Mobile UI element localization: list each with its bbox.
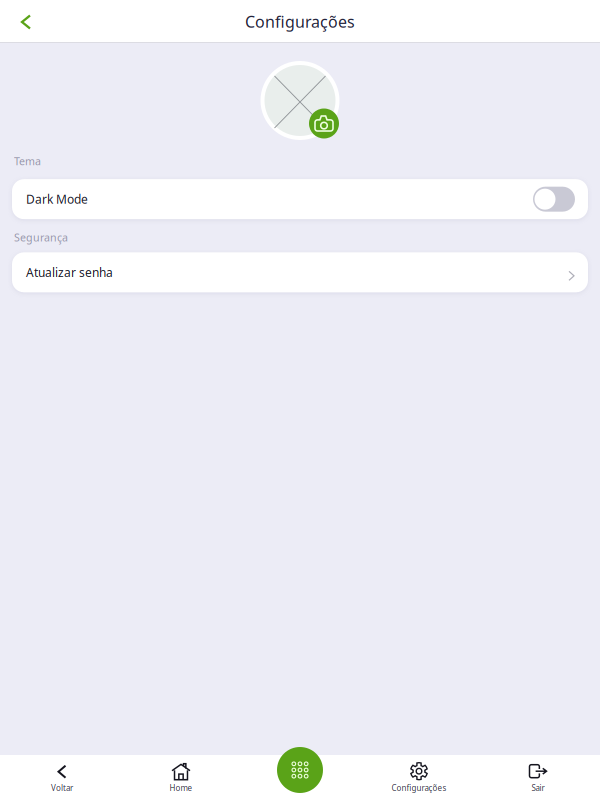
staticText: Configurações [245,11,355,32]
button[interactable]: Home [121,755,240,800]
staticText: Segurança [14,230,68,244]
button[interactable]: Voltar [0,0,44,42]
button[interactable]: Dark Mode [0,179,600,219]
staticText: Tema [14,154,41,168]
staticText: Configurações [391,783,446,793]
staticText: Atualizar senha [26,264,113,280]
button[interactable]: Menu [277,747,323,793]
staticText: Sair [531,783,544,793]
staticText: Voltar [51,783,73,793]
button[interactable]: Configurações [359,755,478,800]
button[interactable]: Alterar foto [309,108,339,138]
staticText: Dark Mode [26,191,88,207]
button[interactable]: Sair [478,755,597,800]
staticText: Home [169,783,192,793]
button[interactable]: Atualizar senha [0,252,600,292]
button[interactable]: Voltar [2,755,121,800]
